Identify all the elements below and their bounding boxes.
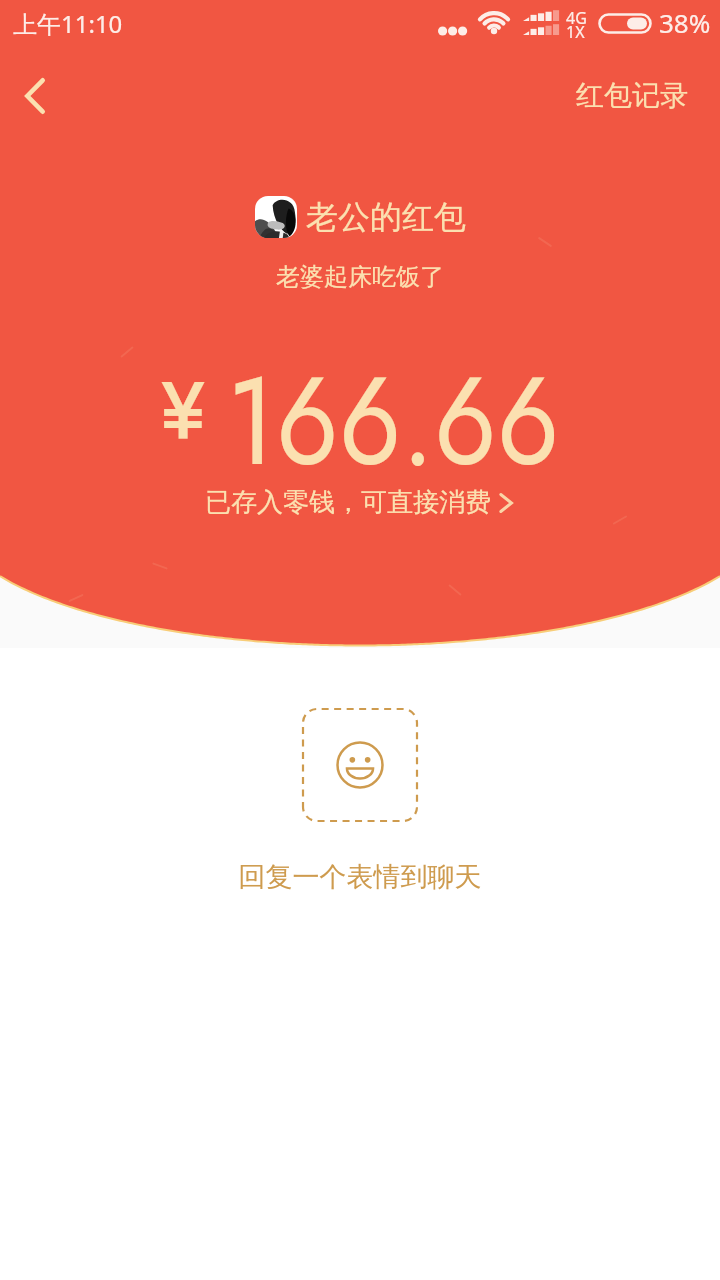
- staticText: 上午11:10: [13, 7, 123, 40]
- staticText: 老婆起床吃饭了: [0, 262, 720, 292]
- button[interactable]: 红包记录: [576, 78, 688, 113]
- button[interactable]: Reply with a sticker: [302, 708, 418, 822]
- staticText: 红包记录: [576, 78, 688, 113]
- staticText: 4G: [566, 7, 587, 29]
- staticText: 38%: [659, 5, 711, 40]
- button[interactable]: Back: [6, 67, 64, 125]
- staticText: 老公的红包: [306, 197, 466, 237]
- staticText: ¥: [161, 352, 205, 469]
- staticText: 166.66: [227, 331, 560, 510]
- staticText: 已存入零钱，可直接消费: [205, 486, 491, 519]
- staticText: 1X: [566, 21, 585, 43]
- staticText: 回复一个表情到聊天: [0, 860, 720, 894]
- button[interactable]: 已存入零钱，可直接消费: [100, 486, 620, 519]
